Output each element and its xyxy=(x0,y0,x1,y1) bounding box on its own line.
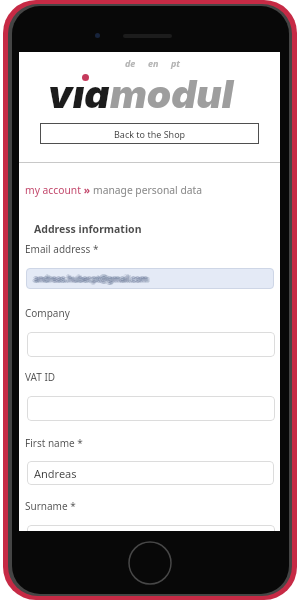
button[interactable]: de xyxy=(119,57,142,69)
staticText: andreas.huber.pt@gmail.com xyxy=(35,273,150,284)
button[interactable] xyxy=(27,332,275,357)
button[interactable]: pt xyxy=(165,57,187,69)
staticText: andreas.huber.pt@gmail.com xyxy=(35,274,150,285)
staticText: Address information xyxy=(34,222,142,236)
button[interactable]: en xyxy=(142,57,165,69)
staticText: de xyxy=(125,57,136,69)
staticText: vıa xyxy=(48,70,110,117)
staticText: andreas.huber.pt@gmail.com xyxy=(33,274,148,285)
staticText: Email address * xyxy=(25,242,99,256)
button[interactable]: Andreas xyxy=(27,461,274,485)
staticText: modul xyxy=(110,70,234,117)
staticText: First name * xyxy=(25,436,83,450)
staticText: manage personal data xyxy=(93,183,202,197)
staticText: » xyxy=(81,183,93,197)
staticText: andreas.huber.pt@gmail.com xyxy=(36,273,151,284)
staticText: Surname * xyxy=(25,499,76,513)
staticText: andreas.huber.pt@gmail.com xyxy=(34,272,149,283)
staticText: andreas.huber.pt@gmail.com xyxy=(32,273,147,284)
staticText: VAT ID xyxy=(25,370,56,384)
staticText: andreas.huber.pt@gmail.com xyxy=(33,272,148,283)
button[interactable] xyxy=(27,525,275,531)
staticText: Company xyxy=(25,306,70,320)
button[interactable]: andreas.huber.pt@gmail.com xyxy=(26,268,274,289)
button[interactable]: my account xyxy=(25,183,81,197)
button[interactable]: Home xyxy=(128,541,172,585)
staticText: en xyxy=(148,57,159,69)
button[interactable] xyxy=(27,396,275,421)
button[interactable]: Back to the Shop xyxy=(40,123,259,144)
staticText: andreas.huber.pt@gmail.com xyxy=(34,274,149,285)
staticText: andreas.huber.pt@gmail.com xyxy=(34,273,149,284)
staticText: pt xyxy=(171,57,181,69)
staticText: Back to the Shop xyxy=(114,128,186,140)
staticText: Andreas xyxy=(34,466,77,481)
